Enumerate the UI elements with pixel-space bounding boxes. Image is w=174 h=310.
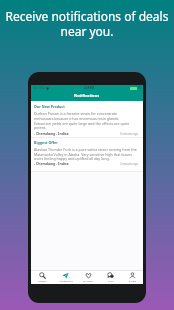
staticText: Profile — [129, 280, 136, 283]
staticText: - Chemdawg - Indica — [34, 161, 69, 166]
staticText: Receive notifications of deals near you. — [0, 8, 174, 39]
staticText: Explore — [38, 280, 47, 283]
staticText: 6 minutes ago — [120, 132, 139, 136]
staticText: potent. — [34, 125, 47, 130]
staticText: Extraction yields are quite large and th… — [34, 121, 130, 126]
staticText: users feeling happy and uplifted all day… — [34, 156, 110, 161]
button[interactable] — [31, 138, 143, 172]
staticText: Not 12:02 — [33, 86, 45, 90]
staticText: 4:28 PM — [84, 86, 94, 90]
staticText: My Deals — [83, 280, 93, 283]
staticText: Our New Product — [34, 104, 65, 109]
staticText: Chat — [108, 280, 113, 283]
staticText: Notifications — [59, 280, 73, 283]
staticText: Durban Poison is a favorite strain for c… — [34, 111, 117, 116]
staticText: 76 — [138, 86, 141, 90]
staticText: Alaskan Thunder Fuck is a pure sativa st… — [34, 147, 137, 152]
button[interactable] — [31, 101, 143, 137]
staticText: 2 minutes ago — [120, 162, 139, 166]
staticText: Notifications — [74, 93, 100, 98]
staticText: Matanuska Valley in Alaska. Very sensiti… — [34, 152, 132, 157]
button[interactable]: Profile — [121, 270, 143, 283]
staticText: - Chemdawg - Indica — [34, 131, 69, 136]
button[interactable]: My Deals — [77, 270, 99, 283]
button[interactable]: Notifications — [54, 270, 77, 283]
staticText: Biggest Offer — [34, 140, 58, 145]
staticText: enthusiasts because it has enormous resi… — [34, 116, 120, 121]
button[interactable]: Chat — [99, 270, 121, 283]
button[interactable]: Explore — [31, 270, 54, 283]
